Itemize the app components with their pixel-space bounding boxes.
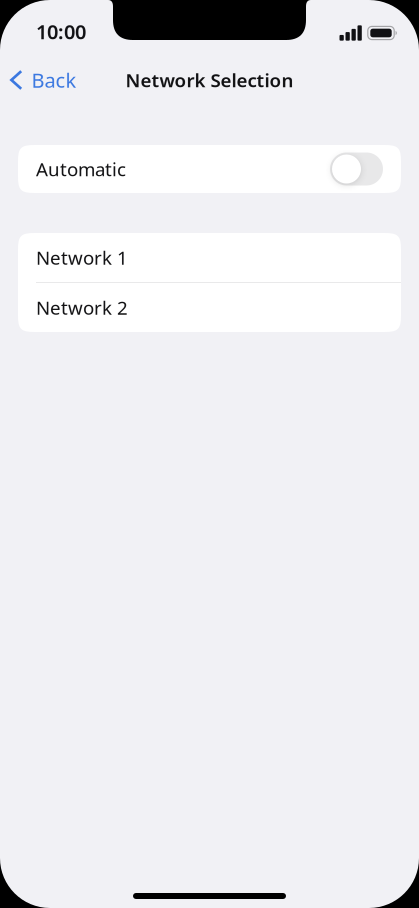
staticText: 10:00 [36,18,86,45]
staticText: Back [32,67,77,93]
button[interactable]: Automatic [18,145,401,193]
button[interactable]: Network 1 [18,233,401,282]
staticText: Network Selection [125,68,293,92]
button[interactable]: Back [0,58,89,102]
staticText: Automatic [36,157,126,181]
staticText: Network 1 [36,245,128,270]
staticText: Network 2 [36,295,128,320]
button[interactable]: Network 2 [18,283,401,332]
